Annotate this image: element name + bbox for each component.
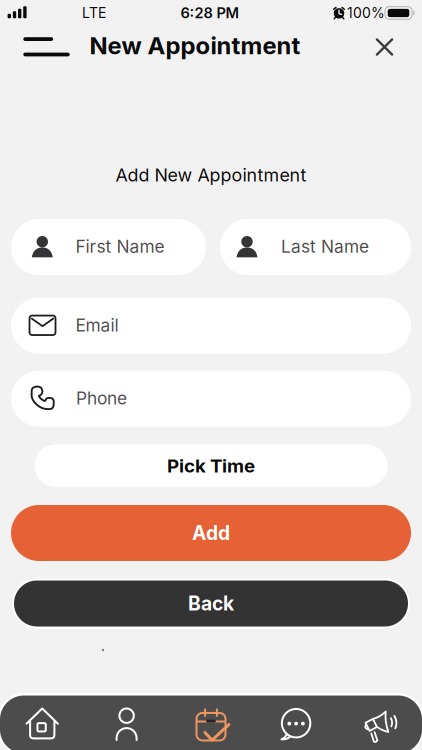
- button[interactable]: Email: [11, 298, 411, 354]
- button[interactable]: Home: [7, 698, 77, 748]
- staticText: First Name: [75, 236, 164, 257]
- staticText: 6:28 PM: [180, 4, 239, 22]
- button[interactable]: Last Name: [220, 219, 411, 275]
- button[interactable]: Profile: [92, 699, 162, 749]
- staticText: Phone: [76, 388, 127, 409]
- staticText: LTE: [82, 4, 106, 21]
- staticText: Add: [192, 521, 230, 545]
- staticText: 100%: [347, 4, 385, 21]
- staticText: New Appointment: [89, 31, 300, 60]
- staticText: Last Name: [281, 236, 369, 257]
- button[interactable]: Announcements: [345, 701, 415, 750]
- button[interactable]: Phone: [11, 371, 411, 427]
- button[interactable]: Add: [11, 505, 411, 561]
- button[interactable]: Menu: [18, 27, 74, 67]
- staticText: Back: [188, 592, 234, 615]
- staticText: Add New Appointment: [115, 164, 306, 186]
- button[interactable]: Appointments: [178, 700, 248, 750]
- button[interactable]: Back: [13, 579, 409, 627]
- staticText: Pick Time: [167, 454, 255, 477]
- staticText: Email: [75, 315, 118, 336]
- button[interactable]: Pick Time: [34, 444, 387, 487]
- button[interactable]: Messages: [260, 699, 330, 749]
- button[interactable]: Close: [364, 27, 404, 67]
- button[interactable]: First Name: [11, 219, 206, 275]
